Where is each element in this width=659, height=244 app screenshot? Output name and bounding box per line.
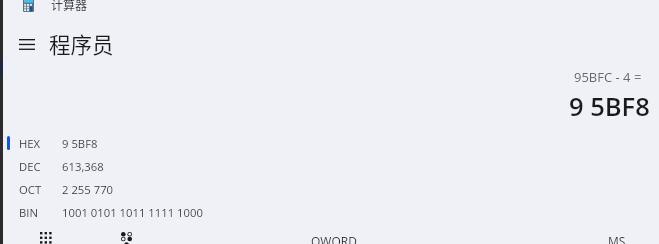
- button[interactable]: MS: [608, 233, 626, 244]
- staticText: OCT: [19, 182, 42, 197]
- button[interactable]: Open navigation: [12, 30, 42, 58]
- staticText: 613,368: [62, 159, 104, 174]
- button[interactable]: Keypad: [30, 226, 62, 244]
- button[interactable]: OCT: [0, 178, 659, 201]
- staticText: 2 255 770: [62, 182, 114, 197]
- staticText: 计算器: [51, 0, 88, 13]
- staticText: DEC: [19, 159, 41, 174]
- button[interactable]: BIN: [0, 201, 659, 224]
- button[interactable]: DEC: [0, 155, 659, 178]
- staticText: BIN: [19, 205, 38, 220]
- staticText: 1001 0101 1011 1111 1000: [62, 205, 203, 220]
- button[interactable]: HEX: [0, 132, 659, 155]
- staticText: HEX: [19, 136, 41, 151]
- button[interactable]: QWORD: [311, 233, 357, 244]
- staticText: 95BFC - 4 =: [574, 68, 642, 86]
- staticText: 程序员: [49, 28, 114, 59]
- staticText: 9 5BF8: [569, 89, 650, 124]
- staticText: 9 5BF8: [62, 136, 98, 151]
- button[interactable]: Bit toggling keypad: [110, 226, 142, 244]
